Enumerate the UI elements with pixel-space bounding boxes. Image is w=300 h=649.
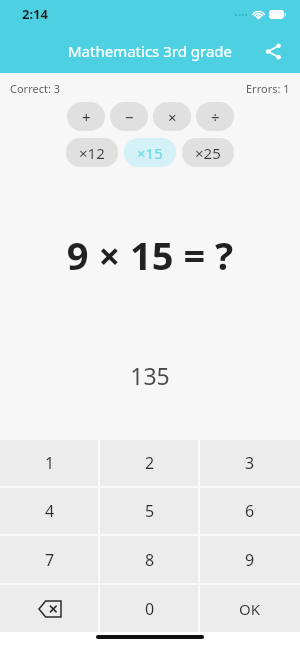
staticText: 3 xyxy=(245,452,255,474)
staticText: 9 × 15 = ? xyxy=(0,229,300,281)
button[interactable]: Share xyxy=(254,32,292,70)
staticText: OK xyxy=(239,599,261,619)
staticText: ×15 xyxy=(137,143,163,163)
staticText: + xyxy=(82,107,91,127)
staticText: − xyxy=(125,107,134,127)
button[interactable]: 3 xyxy=(200,440,300,486)
button[interactable]: ÷ xyxy=(196,102,234,131)
staticText: 8 xyxy=(145,549,155,571)
staticText: 0 xyxy=(145,598,155,620)
staticText: 135 xyxy=(0,360,300,391)
button[interactable]: ×25 xyxy=(182,138,234,167)
button[interactable]: 0 xyxy=(100,585,200,632)
button[interactable]: ×15 xyxy=(124,138,176,167)
staticText: 9 xyxy=(245,549,255,571)
button[interactable]: ×12 xyxy=(66,138,118,167)
staticText: Correct: 3 xyxy=(10,81,61,96)
staticText: 4 xyxy=(45,500,55,522)
staticText: ×12 xyxy=(79,143,105,163)
staticText: 7 xyxy=(45,549,55,571)
staticText: 2:14 xyxy=(22,5,48,23)
staticText: 1 xyxy=(45,452,55,474)
staticText: ×25 xyxy=(195,143,221,163)
staticText: Errors: 1 xyxy=(246,81,290,96)
staticText: 5 xyxy=(145,500,155,522)
button[interactable]: − xyxy=(110,102,148,131)
button[interactable]: 4 xyxy=(0,488,100,534)
button[interactable]: 7 xyxy=(0,536,100,583)
button[interactable]: × xyxy=(153,102,191,131)
button[interactable]: 8 xyxy=(100,536,200,583)
staticText: 6 xyxy=(245,500,255,522)
button[interactable]: + xyxy=(67,102,105,131)
button[interactable]: 1 xyxy=(0,440,100,486)
button[interactable]: 2 xyxy=(100,440,200,486)
button[interactable]: OK xyxy=(200,585,300,632)
staticText: 2 xyxy=(145,452,155,474)
button[interactable]: Backspace xyxy=(0,585,100,632)
staticText: Mathematics 3rd grade xyxy=(68,41,232,61)
button[interactable]: 6 xyxy=(200,488,300,534)
button[interactable]: 9 xyxy=(200,536,300,583)
staticText: ÷ xyxy=(211,107,220,127)
staticText: × xyxy=(168,107,177,127)
button[interactable]: 5 xyxy=(100,488,200,534)
